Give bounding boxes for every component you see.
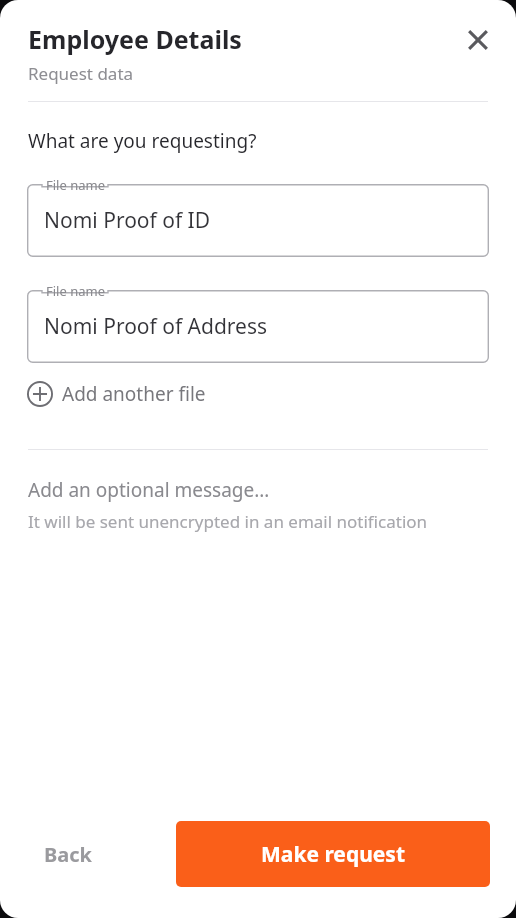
button[interactable]: Make request bbox=[176, 821, 490, 887]
button[interactable]: Add another file bbox=[27, 377, 206, 411]
staticText: Request data bbox=[28, 62, 134, 85]
staticText: Make request bbox=[261, 840, 406, 869]
staticText: File name bbox=[46, 282, 105, 300]
staticText: It will be sent unencrypted in an email … bbox=[28, 510, 428, 533]
staticText: Back bbox=[44, 841, 92, 868]
staticText: Nomi Proof of ID bbox=[44, 206, 211, 235]
button[interactable]: Back bbox=[28, 827, 108, 882]
staticText: Add another file bbox=[62, 381, 206, 407]
staticText: Add an optional message… bbox=[28, 477, 270, 503]
button[interactable]: File name bbox=[27, 282, 489, 363]
staticText: File name bbox=[46, 176, 105, 194]
staticText: Nomi Proof of Address bbox=[44, 312, 268, 341]
button[interactable]: Add an optional message… bbox=[0, 477, 516, 533]
button[interactable]: File name bbox=[27, 176, 489, 257]
staticText: Employee Details bbox=[28, 22, 242, 56]
button[interactable]: Close bbox=[456, 18, 500, 62]
staticText: What are you requesting? bbox=[28, 128, 257, 154]
